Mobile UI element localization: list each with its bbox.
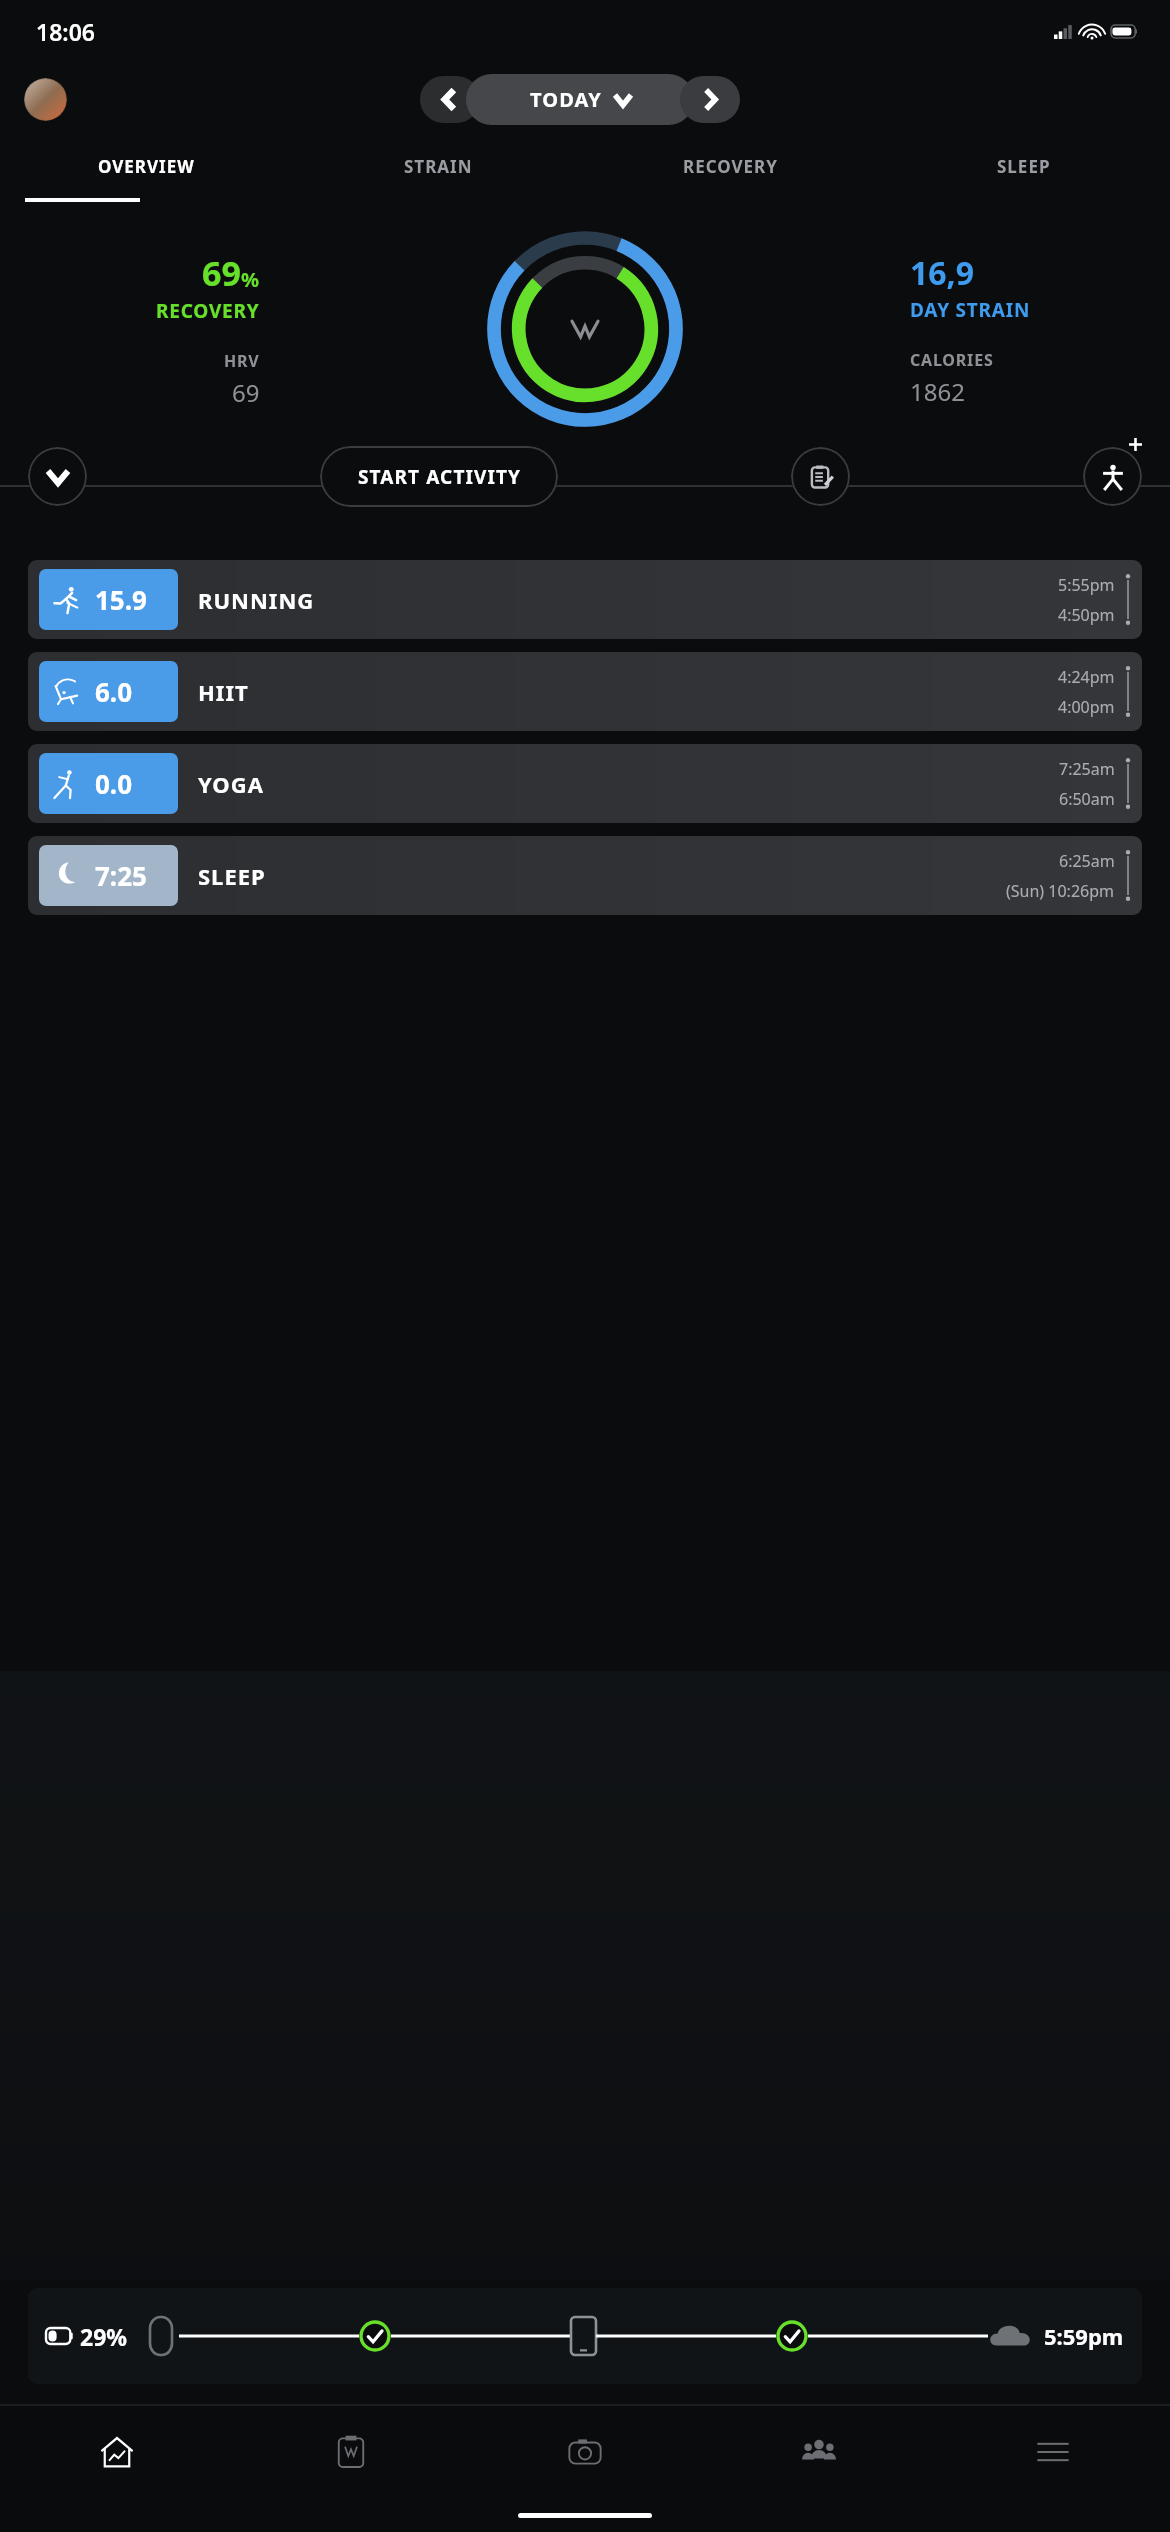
staticText: RECOVERY [683, 155, 778, 178]
button[interactable]: Camera [468, 2406, 702, 2498]
staticText: 7:25am [1059, 758, 1115, 780]
staticText: 4:00pm [1058, 696, 1115, 718]
staticText: HIIT [198, 677, 249, 707]
button[interactable]: Menu [936, 2406, 1170, 2498]
staticText: 69 [202, 250, 241, 296]
button[interactable]: STRAIN [292, 149, 584, 184]
staticText: DAY STRAIN [910, 297, 1031, 323]
staticText: OVERVIEW [98, 155, 195, 178]
button[interactable]: TODAY [466, 74, 694, 125]
staticText: 4:50pm [1058, 604, 1115, 626]
button[interactable]: 0.0 [28, 744, 1142, 823]
staticText: 69 [232, 376, 260, 409]
staticText: 7:25 [95, 858, 147, 893]
button[interactable]: Journal [234, 2406, 468, 2498]
button[interactable]: START ACTIVITY [320, 446, 558, 507]
staticText: 5:55pm [1058, 574, 1115, 596]
staticText: RUNNING [198, 585, 315, 615]
button[interactable]: Home [0, 2406, 234, 2498]
button[interactable]: Community [702, 2406, 936, 2498]
button[interactable]: 29% [28, 2288, 1142, 2384]
staticText: YOGA [198, 769, 264, 799]
staticText: % [241, 266, 260, 293]
button[interactable]: SLEEP [877, 149, 1170, 184]
staticText: 1862 [910, 375, 965, 408]
button[interactable]: Next day [680, 76, 740, 123]
staticText: 6:25am [1059, 850, 1115, 872]
staticText: 6:50am [1059, 788, 1115, 810]
staticText: HRV [224, 350, 260, 372]
staticText: SLEEP [198, 861, 266, 891]
button[interactable]: Journal [791, 447, 850, 506]
button[interactable]: Profile [24, 78, 67, 121]
staticText: 4:24pm [1058, 666, 1115, 688]
staticText: 0.0 [95, 766, 133, 801]
button[interactable]: RECOVERY [584, 149, 877, 184]
staticText: STRAIN [404, 155, 473, 178]
staticText: 6.0 [95, 674, 133, 709]
staticText: TODAY [530, 86, 602, 113]
staticText: RECOVERY [156, 298, 260, 324]
staticText: 16,9 [910, 251, 975, 295]
staticText: 18:06 [36, 16, 95, 47]
staticText: START ACTIVITY [358, 464, 521, 490]
staticText: CALORIES [910, 349, 994, 371]
staticText: 5:59pm [1044, 2321, 1124, 2351]
staticText: (Sun) 10:26pm [1006, 880, 1115, 902]
staticText: 29% [80, 2321, 128, 2352]
button[interactable]: Add activity [1083, 447, 1142, 506]
button[interactable]: OVERVIEW [0, 149, 292, 184]
button[interactable]: 6.0 [28, 652, 1142, 731]
button[interactable]: 15.9 [28, 560, 1142, 639]
staticText: 15.9 [95, 582, 147, 617]
button[interactable]: 7:25 [28, 836, 1142, 915]
button[interactable]: Previous day [420, 76, 480, 123]
button[interactable]: Expand [28, 447, 87, 506]
staticText: SLEEP [997, 155, 1051, 178]
